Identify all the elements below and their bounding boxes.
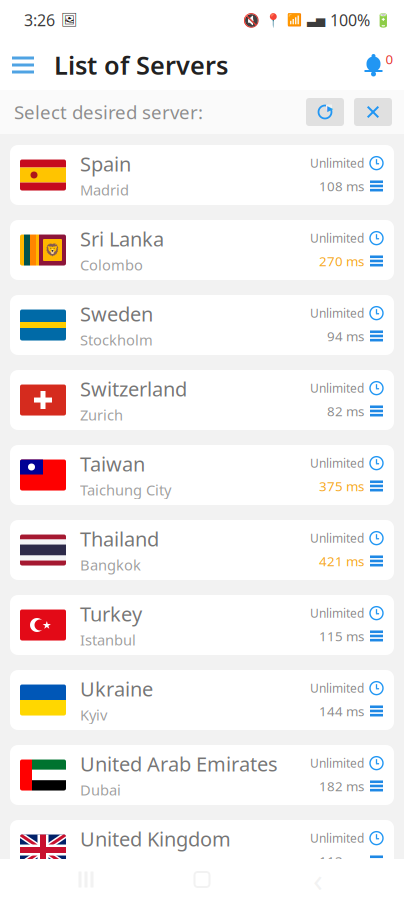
staticText: Istanbul <box>80 630 136 649</box>
staticText: Unlimited <box>310 680 364 696</box>
staticText: Bangkok <box>80 555 141 574</box>
staticText: Taichung City <box>80 480 171 499</box>
staticText: 🔇 <box>243 12 260 28</box>
staticText: Dubai <box>80 780 121 799</box>
button[interactable]: 🦁 <box>10 220 394 280</box>
button[interactable]: Menu <box>0 42 46 88</box>
staticText: 144 ms <box>319 702 364 720</box>
staticText: 270 ms <box>319 252 364 270</box>
staticText: Ukraine <box>80 675 153 702</box>
staticText: Sweden <box>80 300 153 327</box>
staticText: Unlimited <box>310 830 364 846</box>
staticText: 182 ms <box>319 777 364 795</box>
staticText: Unlimited <box>310 230 364 246</box>
staticText: Spain <box>80 150 131 177</box>
staticText: ★ <box>42 619 52 631</box>
staticText: 108 ms <box>319 177 364 195</box>
button[interactable]: Sweden <box>10 295 394 355</box>
staticText: 🦁 <box>45 243 60 257</box>
staticText: Stockholm <box>80 330 153 349</box>
button[interactable]: Notifications <box>352 42 404 88</box>
staticText: Unlimited <box>310 305 364 321</box>
staticText: Unlimited <box>310 155 364 171</box>
staticText: United Arab Emirates <box>80 750 278 777</box>
staticText: Thailand <box>80 525 159 552</box>
button[interactable]: Close <box>354 98 392 126</box>
button[interactable]: Taiwan <box>10 445 394 505</box>
staticText: 📍 <box>265 12 282 28</box>
staticText: List of Servers <box>54 48 228 82</box>
staticText: Unlimited <box>310 380 364 396</box>
staticText: 🖼 <box>61 12 78 28</box>
staticText: United Kingdom <box>80 825 231 852</box>
staticText: 3:26 <box>24 9 55 31</box>
staticText: 94 ms <box>327 327 364 345</box>
staticText: 375 ms <box>319 477 364 495</box>
button[interactable]: United Kingdom <box>10 820 394 880</box>
staticText: Kyiv <box>80 705 107 724</box>
staticText: 0 <box>385 50 393 68</box>
staticText: Unlimited <box>310 605 364 621</box>
staticText: Zurich <box>80 405 123 424</box>
button[interactable]: Refresh <box>306 98 344 126</box>
button[interactable]: Spain <box>10 145 394 205</box>
staticText: 115 ms <box>319 627 364 645</box>
staticText: 100% <box>330 9 370 31</box>
staticText: 🔋 <box>375 12 392 28</box>
staticText: 📶 <box>287 13 302 27</box>
staticText: Colombo <box>80 255 143 274</box>
button[interactable]: United Arab Emirates <box>10 745 394 805</box>
staticText: Select desired server: <box>14 100 203 124</box>
staticText: ▸ <box>327 101 333 115</box>
staticText: Turkey <box>80 600 142 627</box>
button[interactable]: Switzerland <box>10 370 394 430</box>
staticText: Sri Lanka <box>80 225 164 252</box>
button[interactable]: Ukraine <box>10 670 394 730</box>
staticText: Unlimited <box>310 455 364 471</box>
staticText: Unlimited <box>310 530 364 546</box>
button[interactable]: ★ <box>10 595 394 655</box>
staticText: Switzerland <box>80 375 187 402</box>
staticText: 82 ms <box>327 402 364 420</box>
staticText: Unlimited <box>310 755 364 771</box>
staticText: 113 ms <box>319 852 364 870</box>
staticText: ‹ <box>313 858 323 900</box>
staticText: Madrid <box>80 180 129 199</box>
button[interactable]: Thailand <box>10 520 394 580</box>
staticText: ▃▅ <box>307 13 325 27</box>
staticText: 421 ms <box>319 552 364 570</box>
staticText: Taiwan <box>80 450 145 477</box>
